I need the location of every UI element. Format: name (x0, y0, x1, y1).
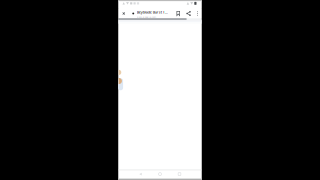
button[interactable]: Home (157, 171, 163, 177)
button[interactable]: Recent apps (177, 171, 182, 177)
staticText: Beyblade Burst T… (137, 10, 168, 15)
button[interactable]: Close (118, 8, 129, 18)
button[interactable]: More options (193, 8, 201, 18)
staticText: docs.google.com (137, 15, 156, 18)
button[interactable]: Share (183, 8, 193, 18)
button[interactable]: Bookmark page (173, 8, 183, 18)
button[interactable]: Back (138, 171, 143, 177)
